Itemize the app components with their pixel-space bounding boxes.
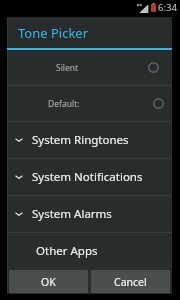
staticText: 6:34 <box>158 1 177 14</box>
button[interactable]: Expand System Alarms <box>7 196 172 232</box>
staticText: System Alarms <box>32 206 112 222</box>
staticText: Other Apps <box>36 243 98 259</box>
staticText: OK <box>41 275 56 289</box>
other: Expand System Ringtones <box>14 135 24 145</box>
staticText: Tone Picker <box>18 24 89 42</box>
staticText: System Notifications <box>32 169 143 185</box>
staticText: Silent <box>56 62 79 74</box>
button[interactable]: Expand System Notifications <box>7 159 172 195</box>
other: Expand System Notifications <box>14 172 24 182</box>
staticText: Default: Default ringtone (Unkn <box>48 98 84 110</box>
button[interactable]: Silent <box>7 50 172 85</box>
other: Expand System Alarms <box>14 209 24 219</box>
button[interactable]: Other Apps <box>7 233 172 268</box>
button[interactable]: Default: Default ringtone (Unkn <box>7 86 172 121</box>
button[interactable]: Cancel <box>91 270 170 293</box>
button[interactable]: OK <box>9 270 88 293</box>
staticText: System Ringtones <box>32 132 129 148</box>
staticText: Cancel <box>114 275 147 289</box>
button[interactable]: Expand System Ringtones <box>7 122 172 158</box>
